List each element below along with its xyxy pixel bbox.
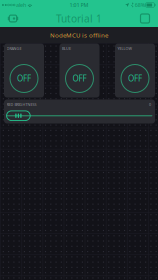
staticText: RED BRIGHTNESS <box>7 102 37 107</box>
staticText: ORANGE <box>7 46 22 51</box>
button[interactable]: BLUE <box>59 43 99 97</box>
button[interactable]: Stop <box>133 10 157 27</box>
staticText: Tutorial 1 <box>56 12 102 25</box>
button[interactable]: ORANGE <box>4 43 44 97</box>
button[interactable]: RED BRIGHTNESS <box>4 99 155 123</box>
staticText: OFF <box>17 73 31 84</box>
staticText: OFF <box>72 73 86 84</box>
staticText: 68% <box>134 1 146 9</box>
staticText: aleh <box>15 1 27 9</box>
button[interactable]: YELLOW <box>115 43 155 97</box>
staticText: 0 <box>149 102 151 107</box>
staticText: NodeMCU is offline <box>50 31 108 39</box>
button[interactable]: Camera <box>1 10 25 27</box>
staticText: BLUE <box>62 46 71 51</box>
staticText: YELLOW <box>118 46 132 51</box>
staticText: 1:01 PM <box>69 1 88 9</box>
staticText: OFF <box>128 73 142 84</box>
